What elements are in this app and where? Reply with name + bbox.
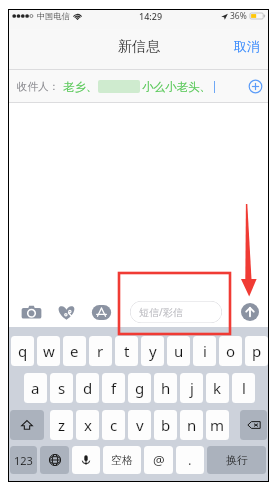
staticText: e xyxy=(70,341,79,361)
button[interactable]: q xyxy=(11,336,34,366)
button[interactable]: 123 xyxy=(10,446,37,474)
button[interactable]: Dictation xyxy=(72,446,100,474)
staticText: u xyxy=(174,341,184,361)
button[interactable]: App Store xyxy=(91,303,112,322)
button[interactable]: m xyxy=(206,410,229,440)
button[interactable]: Add contact xyxy=(248,79,263,94)
staticText: 小么小老头、 xyxy=(142,80,211,94)
staticText: r xyxy=(97,341,104,361)
button[interactable]: h xyxy=(154,373,177,403)
staticText: 换行 xyxy=(226,453,248,467)
button[interactable]: o xyxy=(219,336,242,366)
staticText: l xyxy=(242,378,246,398)
staticText: t xyxy=(124,341,130,361)
button[interactable]: 空格 xyxy=(103,446,141,474)
staticText: m xyxy=(210,415,225,435)
button[interactable]: s xyxy=(50,373,73,403)
staticText: 老乡、 xyxy=(63,80,98,94)
staticText: f xyxy=(111,378,117,398)
staticText: q xyxy=(18,341,28,361)
staticText: o xyxy=(226,341,236,361)
button[interactable]: @ xyxy=(144,446,173,474)
button[interactable]: u xyxy=(167,336,190,366)
staticText: v xyxy=(136,415,144,435)
button[interactable]: Backspace xyxy=(240,410,267,440)
staticText: x xyxy=(84,415,92,435)
staticText: 14:29 xyxy=(139,10,163,22)
button[interactable]: y xyxy=(141,336,164,366)
button[interactable]: x xyxy=(76,410,99,440)
staticText: h xyxy=(161,378,171,398)
staticText: 123 xyxy=(14,453,33,468)
button[interactable]: c xyxy=(102,410,125,440)
button[interactable]: 换行 xyxy=(207,446,266,474)
staticText: c xyxy=(110,415,118,435)
staticText: w xyxy=(43,341,55,361)
staticText: b xyxy=(161,415,171,435)
button[interactable]: a xyxy=(24,373,47,403)
button[interactable]: w xyxy=(37,336,60,366)
button[interactable]: l xyxy=(232,373,255,403)
staticText: g xyxy=(135,378,145,398)
staticText: 新信息 xyxy=(118,38,160,56)
staticText: z xyxy=(58,415,66,435)
staticText: 收件人： xyxy=(17,80,59,93)
button[interactable]: p xyxy=(245,336,268,366)
staticText: 短信/彩信 xyxy=(139,305,183,319)
button[interactable]: t xyxy=(115,336,138,366)
staticText: @ xyxy=(153,451,165,469)
staticText: 36% xyxy=(230,10,247,22)
button[interactable]: g xyxy=(128,373,151,403)
staticText: n xyxy=(187,415,197,435)
button[interactable]: k xyxy=(206,373,229,403)
button[interactable]: Shift xyxy=(10,410,44,440)
button[interactable]: 短信/彩信 xyxy=(130,301,222,323)
button[interactable]: z xyxy=(50,410,73,440)
staticText: . xyxy=(188,451,192,469)
button[interactable]: v xyxy=(128,410,151,440)
staticText: j xyxy=(190,378,194,398)
staticText: a xyxy=(31,378,40,398)
staticText: p xyxy=(252,341,262,361)
button[interactable]: r xyxy=(89,336,112,366)
staticText: y xyxy=(149,341,157,361)
button[interactable]: Digital Touch xyxy=(56,303,77,322)
staticText: s xyxy=(58,378,66,398)
button[interactable]: i xyxy=(193,336,216,366)
staticText: 空格 xyxy=(111,453,133,467)
button[interactable]: Camera xyxy=(21,303,42,322)
staticText: 取消 xyxy=(234,38,260,54)
staticText: 中国电信 xyxy=(37,11,70,21)
button[interactable]: Switch keyboard xyxy=(40,446,69,474)
button[interactable]: Send xyxy=(241,303,259,321)
button[interactable]: . xyxy=(176,446,204,474)
button[interactable]: e xyxy=(63,336,86,366)
button[interactable]: f xyxy=(102,373,125,403)
staticText: k xyxy=(213,378,222,398)
staticText: i xyxy=(203,341,207,361)
button[interactable]: d xyxy=(76,373,99,403)
button[interactable]: j xyxy=(180,373,203,403)
button[interactable]: b xyxy=(154,410,177,440)
button[interactable]: n xyxy=(180,410,203,440)
button[interactable]: 取消 xyxy=(226,29,268,63)
staticText: d xyxy=(83,378,93,398)
